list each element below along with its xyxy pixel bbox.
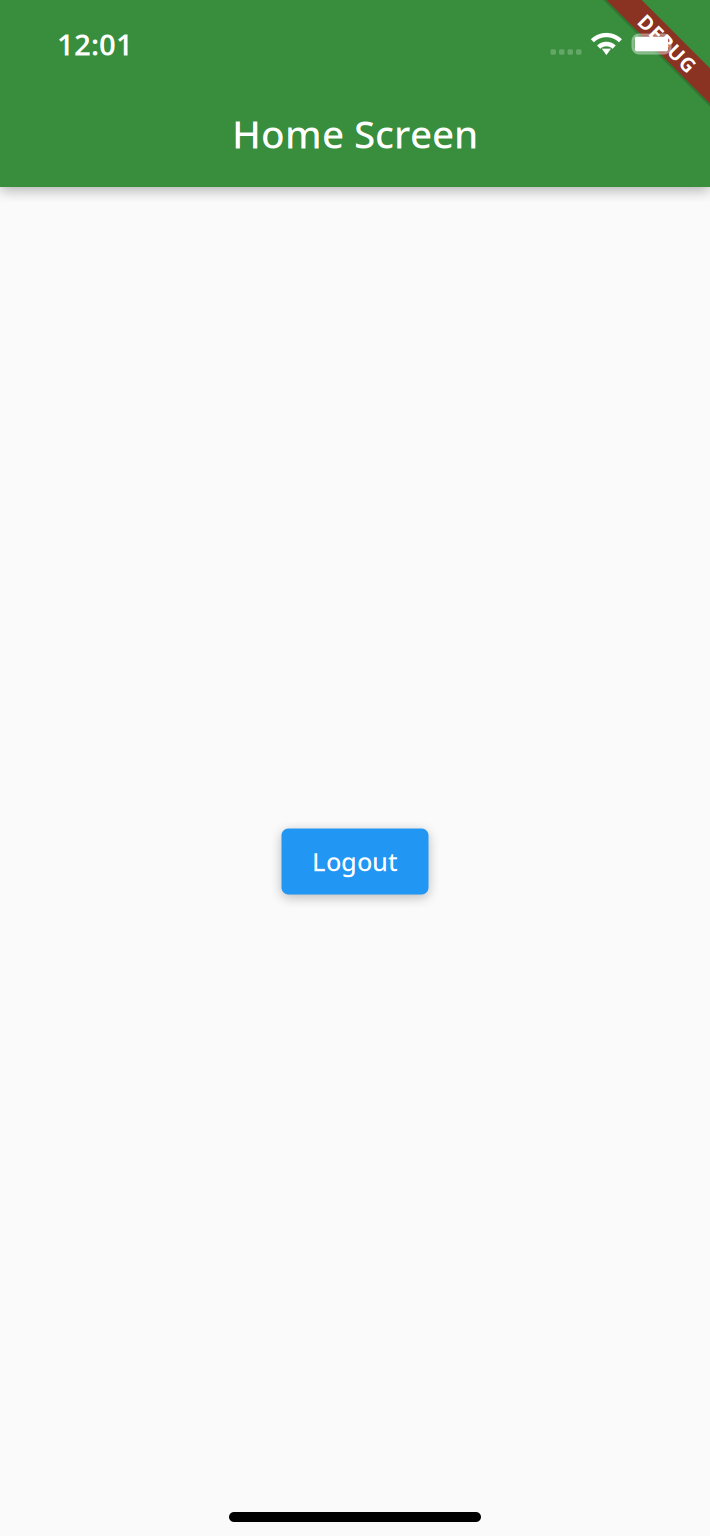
staticText: Home Screen <box>232 108 478 159</box>
staticText: Logout <box>312 845 398 878</box>
staticText: 12:01 <box>57 24 133 63</box>
staticText: DEBUG <box>631 30 703 56</box>
button[interactable]: Logout <box>281 828 428 894</box>
